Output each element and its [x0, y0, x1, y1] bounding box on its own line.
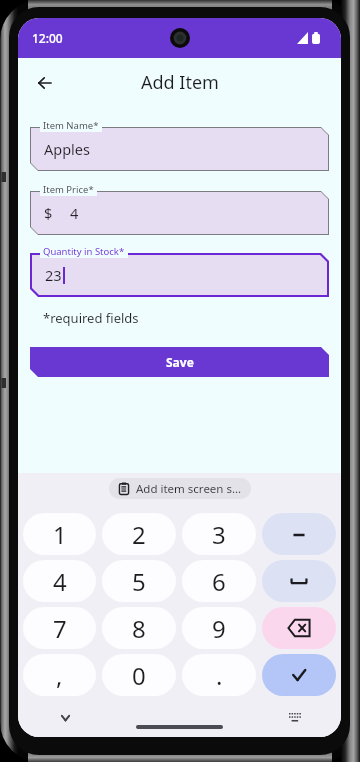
button[interactable]: 5 [102, 560, 176, 602]
staticText: Apples [44, 139, 90, 159]
staticText: Item Price* [43, 183, 94, 196]
button[interactable]: Minus [262, 513, 336, 555]
staticText: 1 [53, 518, 67, 551]
staticText: *required fields [43, 309, 139, 327]
button[interactable]: 23 [32, 255, 327, 295]
button[interactable]: 8 [102, 607, 176, 649]
button[interactable]: Add item screen s... [109, 478, 251, 499]
staticText: Quantity in Stock* [43, 245, 125, 258]
staticText: 3 [212, 518, 226, 551]
button[interactable]: Change keyboard [284, 706, 306, 728]
button[interactable]: Apples [31, 128, 328, 170]
staticText: Add item screen s... [136, 481, 242, 497]
staticText: , [56, 659, 63, 692]
staticText: 9 [212, 612, 226, 645]
button[interactable]: 7 [23, 607, 96, 649]
button[interactable]: 1 [23, 513, 96, 555]
staticText: Add Item [141, 70, 219, 95]
button[interactable]: Back [24, 63, 64, 103]
staticText: 8 [132, 612, 146, 645]
staticText: 5 [132, 565, 146, 598]
button[interactable]: 2 [102, 513, 176, 555]
button[interactable]: 4 [23, 560, 96, 602]
staticText: 4 [70, 203, 79, 223]
button[interactable]: 9 [182, 607, 256, 649]
staticText: 0 [132, 659, 146, 692]
button[interactable]: Space [262, 560, 336, 602]
button[interactable]: Enter [262, 654, 336, 696]
button[interactable]: Backspace [262, 607, 336, 649]
staticText: 4 [53, 565, 67, 598]
button[interactable]: Hide keyboard [54, 707, 76, 729]
button[interactable]: 0 [102, 654, 176, 696]
staticText: . [216, 659, 223, 692]
button[interactable]: $ [31, 192, 328, 234]
button[interactable]: , [23, 654, 96, 696]
staticText: $ [44, 203, 53, 223]
staticText: 6 [212, 565, 226, 598]
staticText: Item Name* [43, 119, 99, 132]
staticText: 23 [45, 265, 62, 285]
button[interactable]: . [182, 654, 256, 696]
staticText: 2 [132, 518, 146, 551]
button[interactable]: 6 [182, 560, 256, 602]
button[interactable]: Save [30, 347, 329, 377]
button[interactable]: 3 [182, 513, 256, 555]
staticText: 12:00 [32, 30, 63, 46]
staticText: 7 [53, 612, 67, 645]
staticText: Save [166, 354, 194, 370]
